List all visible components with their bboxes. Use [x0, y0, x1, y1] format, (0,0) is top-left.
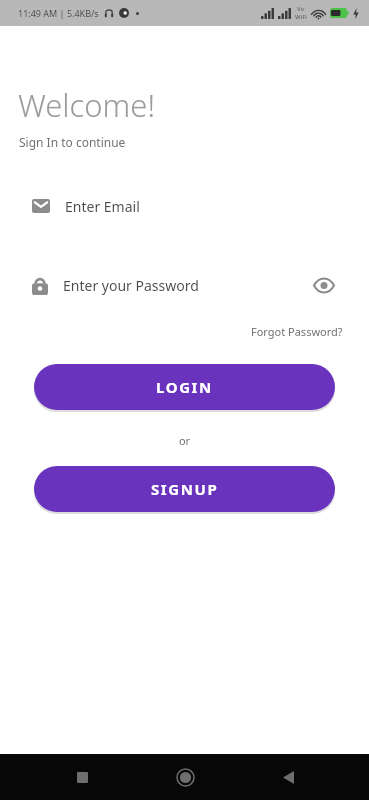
button[interactable]: LOGIN — [34, 364, 335, 410]
button[interactable]: Enter Email — [16, 180, 353, 232]
staticText: LOGIN — [156, 377, 213, 397]
staticText: WiFi — [295, 13, 307, 21]
button[interactable]: Enter your Password — [16, 259, 353, 311]
staticText: Forgot Password? — [251, 324, 343, 339]
staticText: Welcome! — [18, 84, 156, 126]
button[interactable]: Back — [266, 755, 310, 799]
staticText: Vo — [297, 5, 305, 13]
staticText: 11:49 AM | 5.4KB/s — [18, 7, 99, 19]
button[interactable]: Forgot Password? — [225, 319, 369, 344]
button[interactable]: Show password — [311, 272, 337, 298]
button[interactable]: SIGNUP — [34, 466, 335, 512]
staticText: Enter Email — [65, 197, 140, 216]
staticText: Enter your Password — [63, 276, 199, 295]
button[interactable]: Home — [163, 755, 207, 799]
button[interactable]: Recents — [60, 755, 104, 799]
staticText: SIGNUP — [151, 479, 219, 499]
staticText: Sign In to continue — [19, 134, 126, 150]
staticText: or — [0, 433, 369, 448]
